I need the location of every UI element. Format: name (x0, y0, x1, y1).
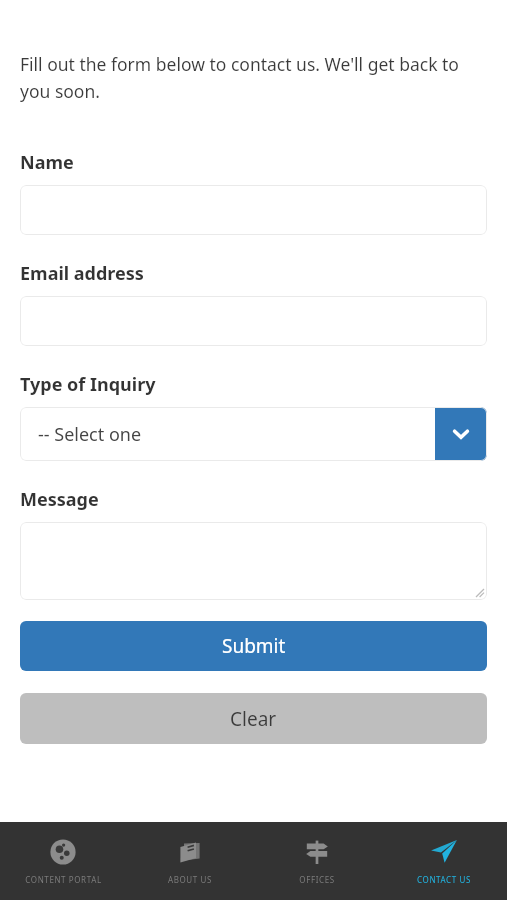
staticText: Email address (20, 261, 144, 286)
button[interactable]: CONTACT US (380, 837, 507, 885)
button[interactable]: Clear (20, 693, 487, 744)
staticText: CONTACT US (417, 874, 471, 885)
button[interactable]: CONTENT PORTAL (0, 837, 126, 885)
staticText: Type of Inquiry (20, 372, 156, 397)
button[interactable]: ABOUT US (126, 837, 253, 885)
staticText: Clear (230, 706, 277, 732)
button[interactable] (20, 296, 487, 346)
button[interactable]: -- Select one (20, 407, 487, 461)
staticText: ABOUT US (168, 874, 212, 885)
button[interactable]: Submit (20, 621, 487, 671)
button[interactable]: OFFICES (253, 837, 380, 885)
staticText: Message (20, 487, 99, 512)
staticText: OFFICES (299, 874, 335, 885)
staticText: CONTENT PORTAL (25, 874, 102, 885)
button[interactable] (20, 185, 487, 235)
staticText: -- Select one (38, 422, 142, 447)
staticText: Name (20, 150, 74, 175)
staticText: Fill out the form below to contact us. W… (20, 52, 487, 103)
button[interactable] (20, 522, 487, 600)
other: Open inquiry type list (435, 407, 487, 461)
staticText: Submit (222, 633, 286, 659)
